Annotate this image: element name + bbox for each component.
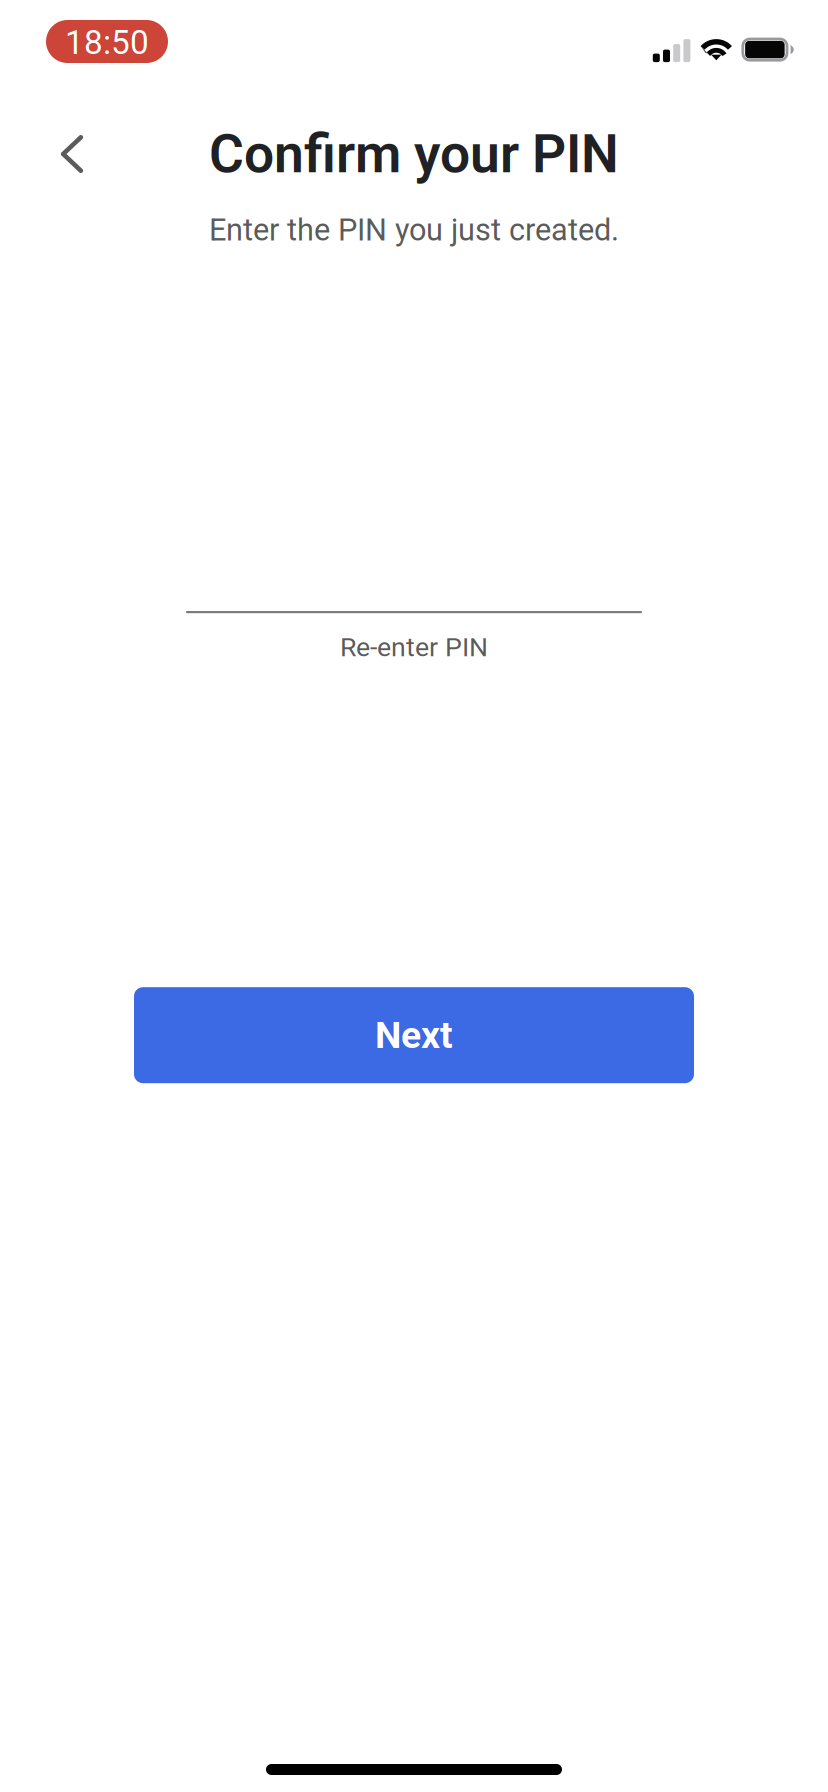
button[interactable]: Next — [134, 987, 694, 1083]
staticText: Enter the PIN you just created. — [209, 212, 619, 248]
button[interactable]: Back — [41, 123, 103, 185]
staticText: 18:50 — [65, 23, 149, 62]
button[interactable]: Re-enter PIN — [186, 611, 642, 659]
staticText: Next — [375, 1013, 453, 1057]
staticText: Re-enter PIN — [340, 632, 488, 663]
staticText: Confirm your PIN — [209, 123, 619, 185]
